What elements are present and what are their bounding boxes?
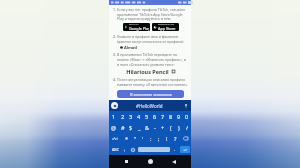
staticText: + bbox=[161, 124, 165, 131]
staticText: Download on the bbox=[158, 23, 175, 26]
staticText: ABC bbox=[112, 147, 119, 152]
staticText: 5 bbox=[145, 113, 149, 120]
button[interactable]: Enter bbox=[180, 146, 190, 153]
staticText: После актуализации описания профиля нажм… bbox=[117, 77, 188, 87]
staticText: ? bbox=[174, 135, 177, 142]
button[interactable]: Keyboard options bbox=[111, 102, 118, 109]
staticText: 3 bbox=[129, 113, 133, 120]
button[interactable]: 8 bbox=[167, 111, 175, 122]
staticText: # bbox=[121, 124, 125, 131]
staticText: * bbox=[125, 135, 129, 142]
button[interactable]: * bbox=[122, 133, 131, 144]
staticText: 2. bbox=[113, 34, 116, 39]
staticText: #HelloWorld bbox=[136, 103, 163, 109]
button[interactable]: ) bbox=[175, 122, 183, 133]
staticText: 0 bbox=[185, 113, 189, 120]
staticText: Я заполнил описание bbox=[130, 92, 172, 97]
staticText: & bbox=[145, 124, 150, 131]
button[interactable]: ( bbox=[167, 122, 175, 133]
button[interactable]: Backspace bbox=[179, 133, 191, 144]
staticText: : bbox=[150, 135, 152, 142]
button[interactable]: - bbox=[151, 122, 159, 133]
button[interactable]: ABC bbox=[109, 144, 121, 155]
staticText: В приложении TikTok перейдите по кнопке … bbox=[117, 52, 188, 67]
button[interactable]: 4 bbox=[135, 111, 143, 122]
staticText: " bbox=[134, 135, 137, 142]
button[interactable]: Get it on Google Play bbox=[123, 23, 150, 31]
button[interactable]: Я заполнил описание bbox=[117, 90, 184, 98]
button[interactable]: ; bbox=[155, 133, 163, 144]
staticText: Если у вас нет профиля TikTok, скачайте … bbox=[117, 7, 188, 21]
button[interactable]: =\< bbox=[109, 133, 122, 144]
staticText: 1 bbox=[112, 113, 116, 120]
button[interactable]: 0 bbox=[183, 111, 191, 122]
button[interactable]: 2 bbox=[118, 111, 127, 122]
button[interactable]: & bbox=[143, 122, 151, 133]
staticText: 7 bbox=[161, 113, 165, 120]
staticText: $ bbox=[129, 124, 133, 131]
button[interactable]: $ bbox=[127, 122, 135, 133]
button[interactable]: Copy bbox=[171, 69, 176, 74]
button[interactable]: 9 bbox=[175, 111, 183, 122]
staticText: Hilarious Pencil bbox=[126, 68, 169, 75]
button[interactable]: 3 bbox=[127, 111, 135, 122]
staticText: Almatl bbox=[124, 45, 138, 50]
button[interactable]: @ bbox=[109, 122, 118, 133]
staticText: . bbox=[174, 146, 176, 153]
button[interactable]: 6 bbox=[151, 111, 159, 122]
button[interactable]: Switch language bbox=[129, 144, 137, 155]
staticText: @ bbox=[111, 124, 116, 131]
staticText: App Store bbox=[158, 26, 176, 31]
staticText: =\< bbox=[112, 136, 119, 141]
button[interactable]: " bbox=[131, 133, 139, 144]
staticText: 9 bbox=[177, 113, 181, 120]
staticText: 4. bbox=[113, 77, 116, 82]
staticText: ( bbox=[170, 124, 172, 131]
staticText: GET IT ON bbox=[129, 23, 139, 26]
staticText: ) bbox=[178, 124, 180, 131]
button[interactable]: ? bbox=[171, 133, 179, 144]
button[interactable]: 5 bbox=[143, 111, 151, 122]
staticText: / bbox=[186, 124, 189, 131]
button[interactable]: + bbox=[159, 122, 167, 133]
button[interactable]: ' bbox=[139, 133, 147, 144]
staticText: 4 bbox=[137, 113, 141, 120]
staticText: Укажите в профиле имя и фамилию (данные … bbox=[117, 34, 188, 44]
staticText: ' bbox=[142, 135, 144, 142]
button[interactable]: Download on the App Store bbox=[152, 23, 179, 31]
button[interactable]: _ bbox=[135, 122, 143, 133]
staticText: 3. bbox=[113, 52, 116, 57]
staticText: ! bbox=[166, 135, 168, 142]
button[interactable]: , bbox=[121, 144, 129, 155]
button[interactable]: / bbox=[183, 122, 191, 133]
button[interactable]: 7 bbox=[159, 111, 167, 122]
staticText: _ bbox=[138, 124, 141, 131]
button[interactable]: ! bbox=[163, 133, 171, 144]
button[interactable]: : bbox=[147, 133, 155, 144]
staticText: - bbox=[154, 124, 156, 131]
staticText: 8 bbox=[169, 113, 173, 120]
button[interactable]: Home bbox=[145, 156, 156, 167]
staticText: 1. bbox=[113, 7, 116, 12]
button[interactable]: 1 bbox=[109, 111, 118, 122]
staticText: , bbox=[124, 146, 126, 153]
staticText: 6 bbox=[153, 113, 157, 120]
button[interactable]: Recents bbox=[121, 156, 132, 167]
staticText: 2 bbox=[121, 113, 125, 120]
button[interactable]: Voice input bbox=[182, 102, 189, 109]
staticText: ; bbox=[158, 135, 160, 142]
button[interactable]: # bbox=[118, 122, 127, 133]
button[interactable]: Back bbox=[168, 156, 179, 167]
button[interactable]: . bbox=[171, 144, 179, 155]
staticText: Google Play bbox=[129, 26, 149, 31]
button[interactable]: Space bbox=[138, 147, 170, 152]
